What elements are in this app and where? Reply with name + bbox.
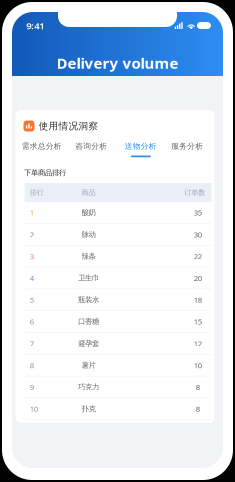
staticText: 下单商品排行: [24, 168, 66, 177]
button[interactable]: 需求总分析: [22, 141, 62, 157]
staticText: 口香糖: [78, 317, 99, 326]
staticText: 8: [30, 360, 34, 370]
staticText: 30: [194, 229, 202, 240]
staticText: 商品: [81, 188, 95, 197]
staticText: 使用情况洞察: [38, 120, 98, 132]
staticText: 扑克: [81, 404, 95, 413]
staticText: 1: [30, 207, 34, 218]
staticText: 9:41: [26, 19, 44, 32]
button[interactable]: 咨询分析: [75, 141, 107, 157]
staticText: Delivery volume: [56, 53, 178, 73]
staticText: 22: [194, 251, 202, 261]
staticText: 4: [30, 273, 34, 283]
staticText: 15: [194, 316, 202, 327]
staticText: 巧克力: [78, 382, 99, 392]
staticText: 8: [196, 382, 200, 392]
staticText: 排行: [30, 188, 44, 197]
staticText: 20: [194, 273, 202, 283]
staticText: 咨询分析: [75, 141, 107, 151]
staticText: 5: [30, 294, 34, 305]
staticText: 辣条: [81, 251, 95, 261]
button[interactable]: 送物分析: [125, 141, 157, 157]
staticText: 18: [194, 294, 202, 305]
staticText: 薯片: [81, 360, 95, 370]
staticText: 脉动: [81, 230, 95, 239]
staticText: 服务分析: [171, 141, 203, 151]
staticText: 10: [30, 403, 38, 414]
staticText: 需求总分析: [22, 141, 62, 151]
staticText: 6: [30, 316, 34, 327]
staticText: 8: [196, 403, 200, 414]
staticText: 订单数: [184, 188, 205, 197]
staticText: 9: [30, 382, 34, 392]
staticText: 12: [194, 338, 202, 349]
staticText: 10: [194, 360, 202, 370]
staticText: 2: [30, 229, 34, 240]
staticText: 3: [30, 251, 34, 261]
staticText: 酸奶: [81, 208, 95, 217]
staticText: 送物分析: [125, 141, 157, 151]
staticText: 卫生巾: [78, 273, 99, 283]
staticText: 35: [194, 207, 202, 218]
button[interactable]: 服务分析: [171, 141, 203, 157]
staticText: 避孕套: [78, 339, 99, 348]
staticText: 7: [30, 338, 34, 349]
staticText: 瓶装水: [78, 295, 99, 304]
